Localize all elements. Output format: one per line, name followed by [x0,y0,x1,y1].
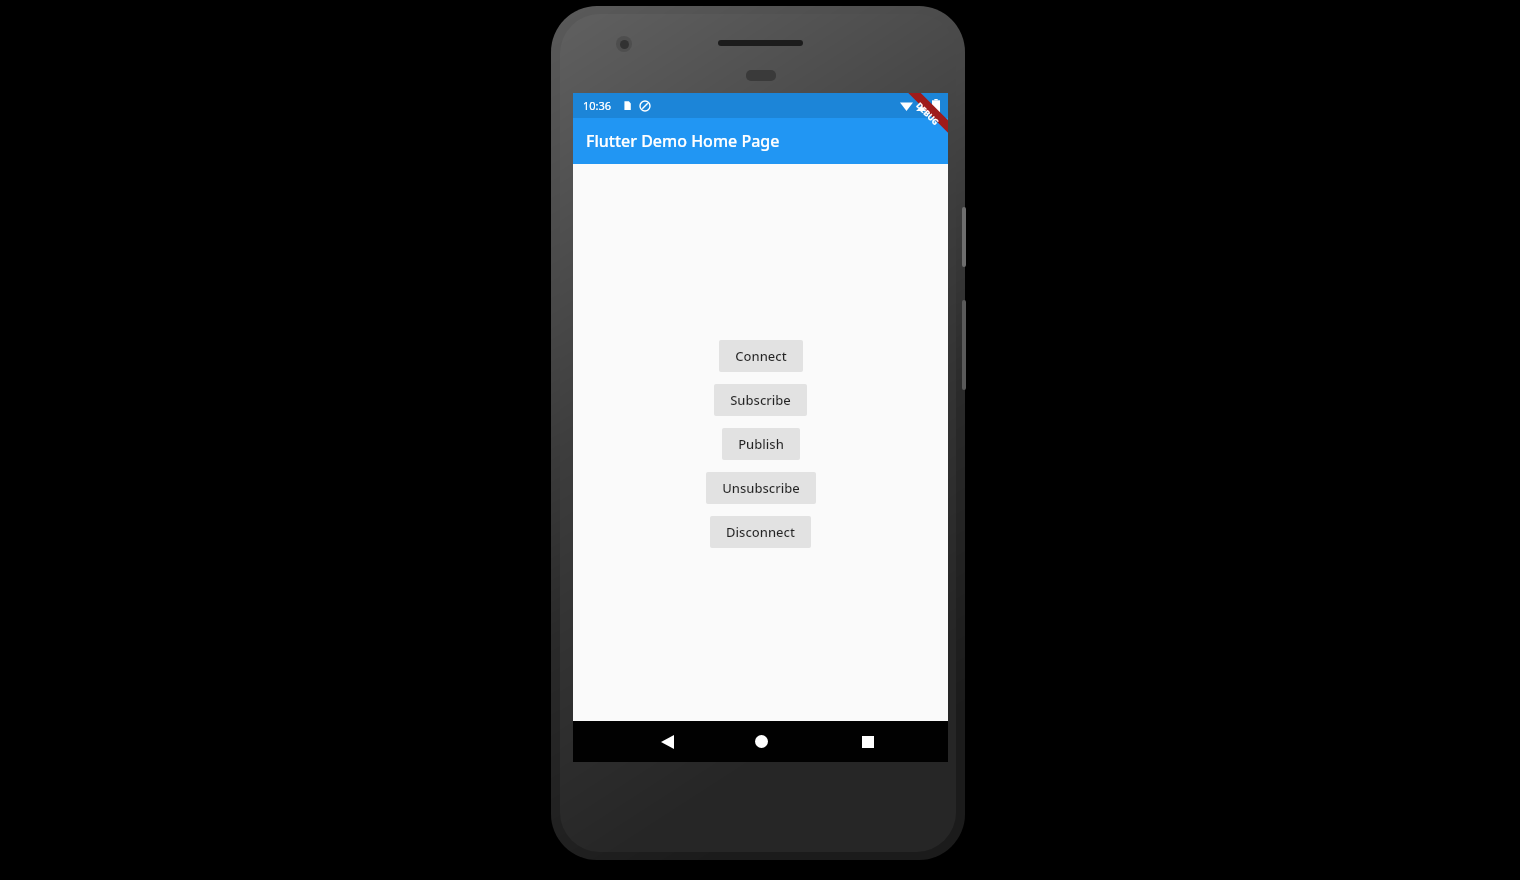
staticText: Publish [738,435,784,453]
button[interactable]: Recents [836,721,900,762]
button[interactable]: Subscribe [714,384,807,416]
staticText: Subscribe [730,391,791,409]
button[interactable]: Unsubscribe [706,472,816,504]
button[interactable]: Disconnect [710,516,811,548]
button[interactable]: Back [635,721,699,762]
button[interactable]: Publish [722,428,800,460]
button[interactable]: Connect [719,340,803,372]
staticText: Flutter Demo Home Page [586,130,780,152]
staticText: 10:36 [583,98,612,113]
staticText: Unsubscribe [722,479,800,497]
staticText: Connect [735,347,787,365]
staticText: DEBUG [914,100,942,127]
button[interactable]: Home [729,721,793,762]
staticText: Disconnect [726,523,795,541]
